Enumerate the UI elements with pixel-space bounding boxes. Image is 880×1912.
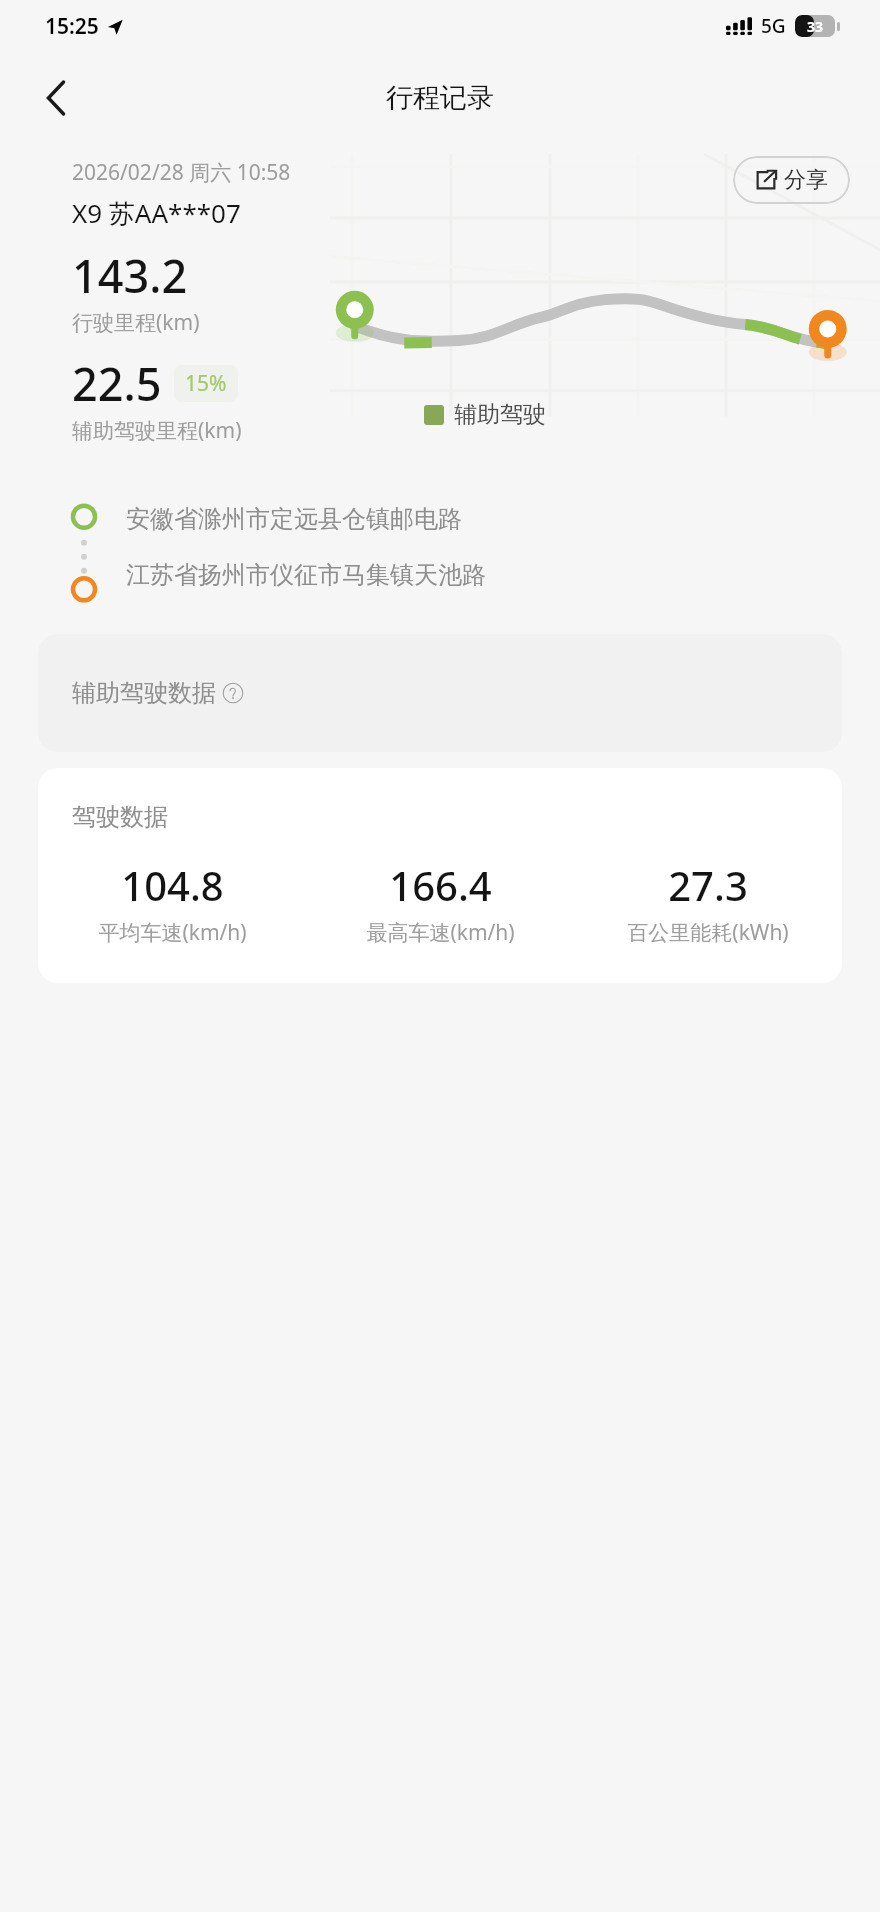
button[interactable]: 分享 [733, 156, 850, 204]
staticText: 15% [185, 369, 227, 398]
staticText: 33 [807, 17, 824, 36]
staticText: 最高车速(km/h) [366, 918, 515, 947]
staticText: 行程记录 [386, 81, 494, 115]
staticText: 分享 [784, 166, 828, 194]
staticText: 辅助驾驶 [454, 400, 546, 429]
staticText: 5G [761, 13, 786, 39]
staticText: 27.3 [668, 858, 748, 912]
staticText: 安徽省滁州市定远县仓镇邮电路 [126, 504, 462, 534]
staticText: 驾驶数据 [72, 802, 168, 832]
staticText: 22.5 [72, 353, 162, 414]
button[interactable]: 辅助驾驶数据 [38, 634, 842, 752]
staticText: 104.8 [121, 858, 224, 912]
staticText: 江苏省扬州市仪征市马集镇天池路 [126, 560, 486, 590]
staticText: 辅助驾驶里程(km) [72, 416, 242, 445]
staticText: 平均车速(km/h) [98, 918, 247, 947]
staticText: 143.2 [72, 245, 188, 306]
staticText: 2026/02/28 周六 10:58 [72, 158, 291, 187]
staticText: X9 苏AA***07 [72, 195, 241, 231]
staticText: 行驶里程(km) [72, 308, 200, 337]
staticText: 辅助驾驶数据 [72, 678, 216, 708]
staticText: 百公里能耗(kWh) [627, 918, 789, 947]
staticText: 166.4 [389, 858, 492, 912]
staticText: 15:25 [45, 12, 99, 41]
button[interactable]: 返回 [28, 70, 84, 126]
